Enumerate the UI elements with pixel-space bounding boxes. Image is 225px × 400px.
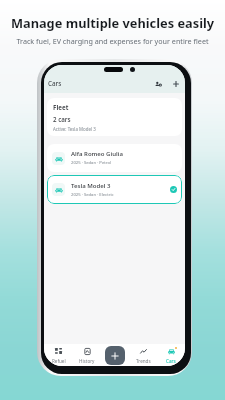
button[interactable]: History — [73, 344, 101, 364]
staticText: 2025 · Sedan · Petrol — [71, 160, 112, 166]
staticText: History — [79, 358, 95, 364]
staticText: Trends — [136, 358, 151, 364]
staticText: Cars — [48, 79, 62, 88]
staticText: 2 cars — [53, 115, 71, 123]
button[interactable]: Fleet — [47, 98, 182, 136]
staticText: Tesla Model 3 — [71, 182, 111, 190]
button[interactable]: Trends — [129, 344, 157, 364]
button[interactable]: Add entry — [105, 346, 125, 365]
button[interactable]: Alfa Romeo Giulia — [47, 144, 182, 172]
staticText: Fleet — [53, 103, 69, 111]
staticText: Cars — [166, 358, 176, 364]
staticText: Track fuel, EV charging and expenses for… — [0, 36, 225, 46]
button[interactable]: Refuel — [44, 344, 73, 364]
button[interactable]: Cars — [157, 344, 185, 364]
button[interactable]: Manage drivers — [153, 78, 164, 89]
button[interactable]: Tesla Model 3 — [47, 175, 182, 204]
button[interactable]: Add car — [170, 78, 181, 89]
staticText: Active: Tesla Model 3 — [53, 126, 96, 132]
staticText: Refuel — [52, 358, 66, 364]
staticText: Manage multiple vehicles easily — [0, 14, 225, 31]
staticText: Alfa Romeo Giulia — [71, 150, 123, 158]
staticText: 2025 · Sedan · Electric — [71, 192, 114, 198]
